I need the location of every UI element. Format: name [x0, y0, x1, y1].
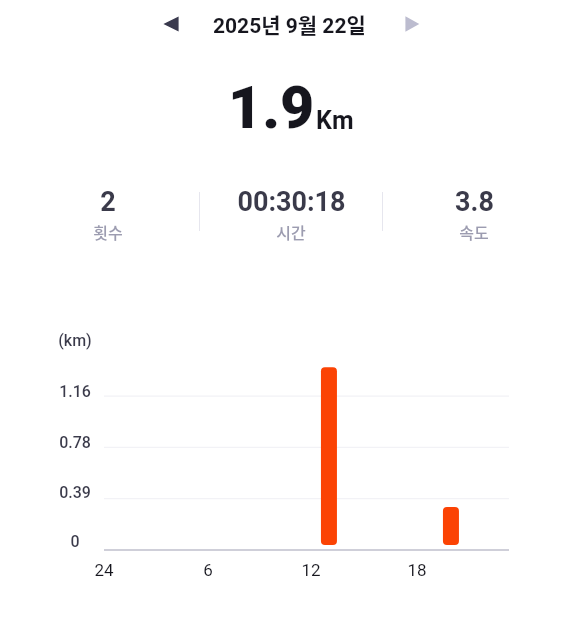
- staticText: 00:30:18: [237, 186, 346, 218]
- staticText: Km: [316, 106, 354, 135]
- staticText: 1.16: [59, 382, 91, 401]
- button[interactable]: Previous day: [149, 1, 195, 47]
- staticText: 12: [301, 560, 321, 580]
- staticText: 0: [70, 532, 80, 551]
- staticText: 0.78: [59, 433, 91, 452]
- staticText: 24: [94, 560, 114, 580]
- staticText: 2: [100, 186, 116, 218]
- staticText: 속도: [459, 220, 489, 243]
- staticText: 2025년 9월 22일: [213, 9, 366, 39]
- staticText: 6: [203, 560, 213, 580]
- staticText: 3.8: [455, 186, 494, 218]
- button[interactable]: Next day: [388, 1, 434, 47]
- staticText: 시간: [276, 220, 306, 243]
- staticText: 횟수: [93, 220, 123, 243]
- staticText: (km): [58, 331, 92, 350]
- staticText: 18: [407, 560, 427, 580]
- staticText: 1.9: [228, 73, 315, 142]
- button[interactable]: (km): [0, 0, 582, 640]
- staticText: 0.39: [59, 483, 91, 502]
